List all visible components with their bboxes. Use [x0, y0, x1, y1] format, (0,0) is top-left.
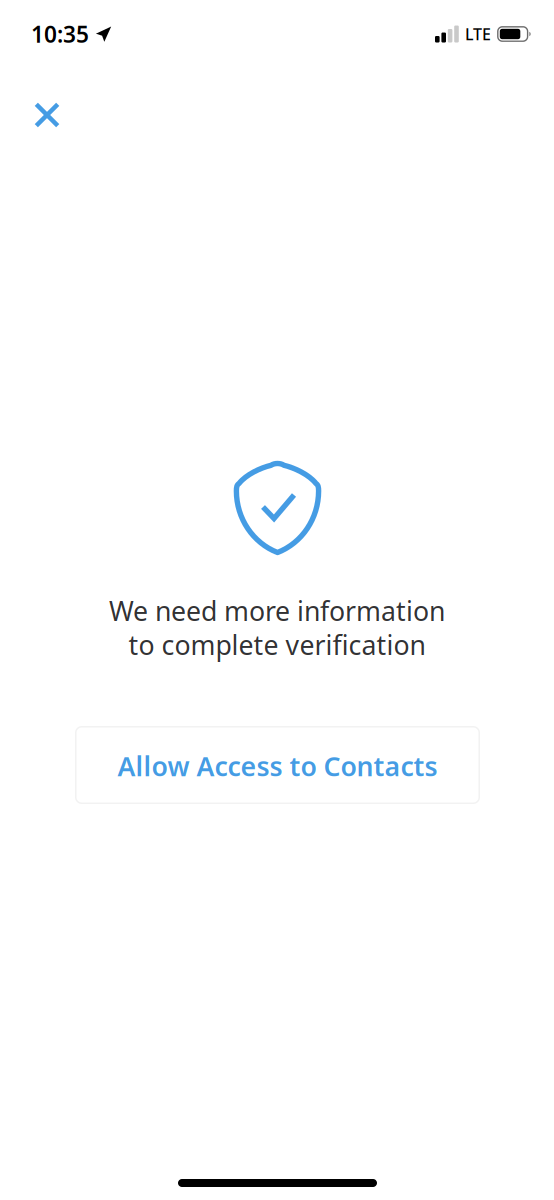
button[interactable]: Close: [14, 86, 80, 146]
staticText: 10:35: [31, 19, 89, 49]
staticText: Allow Access to Contacts: [117, 748, 437, 784]
staticText: LTE: [465, 23, 491, 45]
staticText: We need more information: [109, 593, 445, 628]
staticText: to complete verification: [128, 627, 425, 662]
button[interactable]: Allow Access to Contacts: [75, 726, 480, 804]
